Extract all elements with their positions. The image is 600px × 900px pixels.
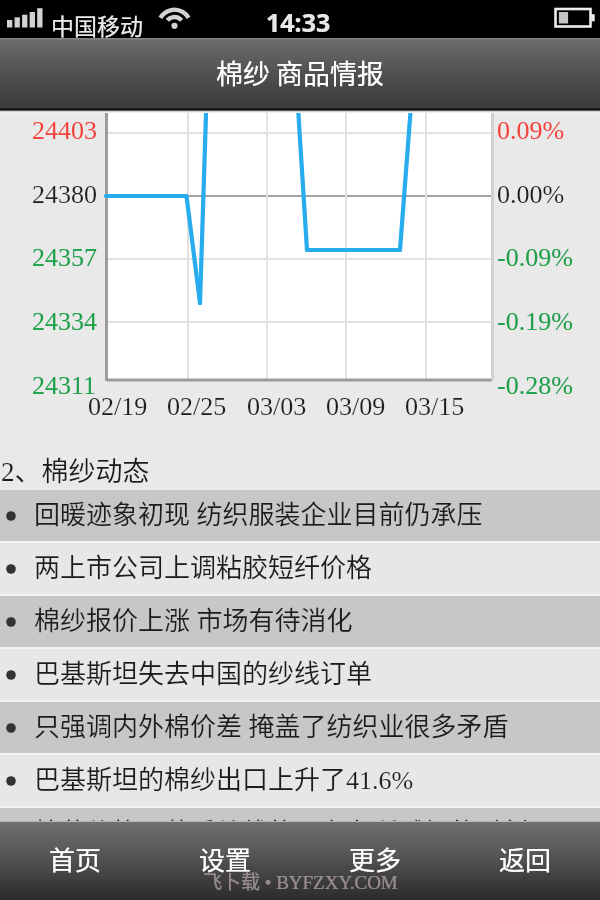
button[interactable]: 只强调内外棉价差 掩盖了纺织业很多矛盾 xyxy=(0,702,600,755)
staticText: 02/25 xyxy=(167,392,227,421)
staticText: 24334 xyxy=(32,307,97,336)
staticText: 03/03 xyxy=(247,392,307,421)
staticText: 棉花价格回落后纱线的压力有所减轻的时刻 xyxy=(34,812,529,821)
staticText: 首页 xyxy=(49,840,102,878)
staticText: -0.09% xyxy=(497,243,573,272)
staticText: 巴基斯坦的棉纱出口上升了41.6% xyxy=(34,759,414,797)
staticText: 03/15 xyxy=(405,392,465,421)
staticText: 0.09% xyxy=(497,116,565,145)
staticText: -0.19% xyxy=(497,307,573,336)
staticText: 两上市公司上调粘胶短纤价格 xyxy=(34,547,373,585)
staticText: 03/09 xyxy=(326,392,386,421)
staticText: 更多 xyxy=(349,840,402,878)
button[interactable]: 巴基斯坦的棉纱出口上升了41.6% xyxy=(0,755,600,808)
staticText: 24311 xyxy=(32,371,97,400)
staticText: 飞卜载 • BYFZXY.COM xyxy=(203,867,398,895)
staticText: 2、棉纱动态 xyxy=(1,450,150,489)
staticText: -0.28% xyxy=(497,371,573,400)
button[interactable]: 棉花价格回落后纱线的压力有所减轻的时刻 xyxy=(0,808,600,821)
staticText: 02/19 xyxy=(88,392,148,421)
button[interactable]: 回暖迹象初现 纺织服装企业目前仍承压 xyxy=(0,490,600,543)
staticText: 返回 xyxy=(499,840,552,878)
staticText: 24380 xyxy=(32,180,97,209)
staticText: 24403 xyxy=(32,116,97,145)
staticText: 0.00% xyxy=(497,180,565,209)
staticText: 24357 xyxy=(32,243,97,272)
staticText: 棉纱报价上涨 市场有待消化 xyxy=(34,600,353,638)
button[interactable]: 返回 xyxy=(450,821,600,900)
button[interactable]: 首页 xyxy=(0,821,150,900)
button[interactable]: 更多 xyxy=(300,821,450,900)
staticText: 只强调内外棉价差 掩盖了纺织业很多矛盾 xyxy=(34,706,509,744)
button[interactable]: 巴基斯坦失去中国的纱线订单 xyxy=(0,649,600,702)
button[interactable]: 棉纱报价上涨 市场有待消化 xyxy=(0,596,600,649)
button[interactable]: 两上市公司上调粘胶短纤价格 xyxy=(0,543,600,596)
staticText: 设置 xyxy=(199,840,252,878)
staticText: 14:33 xyxy=(266,5,331,39)
staticText: 回暖迹象初现 纺织服装企业目前仍承压 xyxy=(34,494,483,532)
staticText: 棉纱 商品情报 xyxy=(216,53,385,92)
staticText: 中国移动 xyxy=(51,8,143,41)
button[interactable]: 设置 xyxy=(150,821,300,900)
staticText: 巴基斯坦失去中国的纱线订单 xyxy=(34,653,373,691)
